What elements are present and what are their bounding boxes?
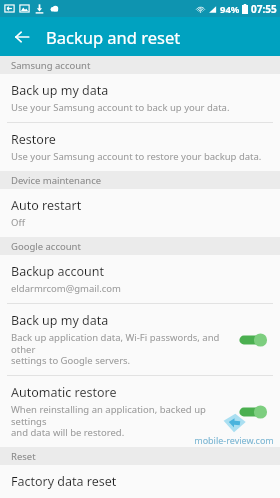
staticText: Back up my data [11,312,109,329]
staticText: Use your Samsung account to restore your… [11,150,262,163]
staticText: Device maintenance [11,174,102,187]
staticText: Off [11,216,25,229]
staticText: Back up application data, Wi-Fi password… [11,331,230,367]
staticText: Automatic restore [11,384,117,401]
button[interactable]: Auto restart [0,189,280,237]
button[interactable]: Automatic restore [0,376,280,447]
button[interactable]: Restore [0,123,280,171]
staticText: Reset [11,450,36,463]
button[interactable]: Backup account [0,255,280,303]
staticText: 94% [220,3,240,16]
staticText: Backup and reset [46,26,181,48]
staticText: When reinstalling an application, backed… [11,403,230,439]
staticText: Backup account [11,263,105,280]
staticText: Google account [11,240,81,253]
button[interactable]: Toggle Automatic restore [236,401,270,423]
button[interactable]: Back up my data [0,74,280,122]
button[interactable]: Back up my data [0,304,280,375]
staticText: eldarmrcom@gmail.com [11,282,121,295]
staticText: mobile-review.com [194,434,274,446]
staticText: Use your Samsung account to back up your… [11,101,230,114]
button[interactable]: Back [8,23,36,51]
staticText: Samsung account [11,59,91,72]
button[interactable]: Factory data reset [0,465,280,498]
staticText: Auto restart [11,197,82,214]
staticText: Restore [11,131,56,148]
button[interactable]: Toggle Back up my data [236,329,270,351]
staticText: Factory data reset [11,473,117,490]
staticText: Back up my data [11,82,109,99]
staticText: 07:55 [251,2,277,16]
